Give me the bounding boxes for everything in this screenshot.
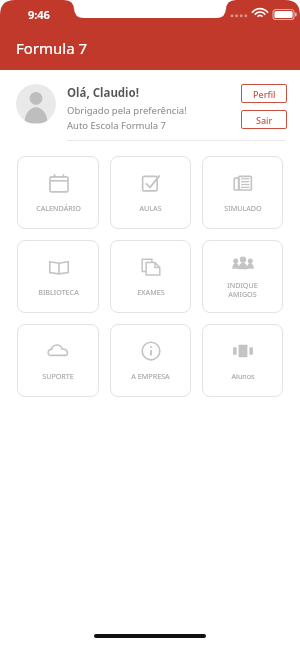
button[interactable]: CALENDÁRIO xyxy=(17,156,99,229)
button[interactable]: A EMPRESA xyxy=(110,324,191,397)
button[interactable]: EXAMES xyxy=(110,240,191,313)
staticText: Auto Escola Formula 7 xyxy=(67,119,167,132)
button[interactable]: Perfil xyxy=(241,84,287,103)
button[interactable]: SIMULADO xyxy=(202,156,283,229)
staticText: Alunos xyxy=(231,371,255,381)
button[interactable]: Sair xyxy=(241,110,287,129)
staticText: SIMULADO xyxy=(224,203,262,213)
staticText: Obrigado pela preferência! xyxy=(67,104,187,117)
button[interactable]: SUPORTE xyxy=(17,324,99,397)
button[interactable]: BIBLIOTECA xyxy=(17,240,99,313)
staticText: SUPORTE xyxy=(42,371,74,381)
staticText: CALENDÁRIO xyxy=(36,203,81,213)
staticText: Formula 7 xyxy=(16,38,88,58)
button[interactable]: INDIQUE AMIGOS xyxy=(202,240,283,313)
staticText: BIBLIOTECA xyxy=(38,287,79,297)
staticText: INDIQUE AMIGOS xyxy=(227,280,258,300)
staticText: Perfil xyxy=(253,88,276,100)
staticText: Olá, Claudio! xyxy=(67,85,139,101)
button[interactable]: Alunos xyxy=(202,324,283,397)
staticText: Sair xyxy=(256,114,273,126)
button[interactable]: AULAS xyxy=(110,156,191,229)
staticText: AULAS xyxy=(139,203,162,213)
staticText: A EMPRESA xyxy=(131,371,170,381)
staticText: 9:46 xyxy=(28,7,50,22)
staticText: EXAMES xyxy=(137,287,165,297)
